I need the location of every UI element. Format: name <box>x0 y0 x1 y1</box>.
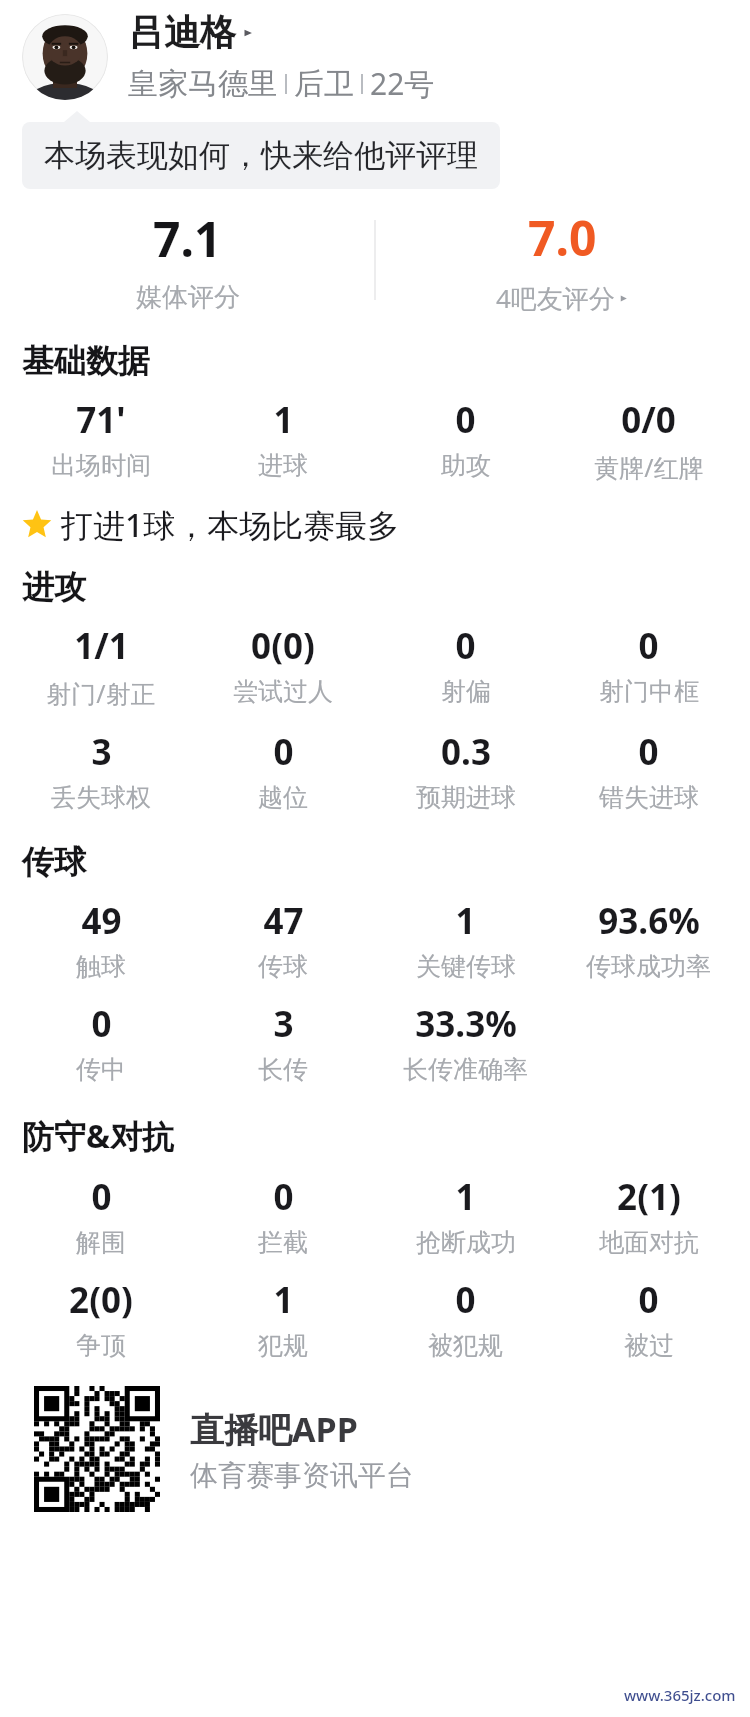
staticText: 助攻 <box>441 450 491 481</box>
button[interactable]: 0 <box>374 387 557 490</box>
staticText: 抢断成功 <box>416 1227 516 1258</box>
button[interactable]: 0 <box>374 613 557 716</box>
staticText: 传中 <box>76 1054 126 1085</box>
staticText: 错失进球 <box>599 782 699 813</box>
button[interactable]: 0.3 <box>374 719 557 822</box>
staticText: 93.6% <box>598 897 700 945</box>
button[interactable]: 0(0) <box>192 613 374 716</box>
button[interactable]: 0 <box>10 1164 192 1267</box>
button[interactable]: 71' <box>10 387 192 490</box>
staticText: 进球 <box>258 450 308 481</box>
staticText: 0 <box>638 728 659 776</box>
staticText: 2(0) <box>69 1276 133 1324</box>
staticText: 吕迪格 <box>128 10 236 55</box>
staticText: 0 <box>273 728 294 776</box>
staticText: 71' <box>76 396 126 444</box>
staticText: 出场时间 <box>51 450 151 481</box>
button[interactable]: 1 <box>192 1267 374 1370</box>
button[interactable]: 1 <box>192 387 374 490</box>
staticText: 被犯规 <box>428 1330 503 1361</box>
staticText: 3 <box>273 1000 294 1048</box>
staticText: 47 <box>263 897 304 945</box>
staticText: 0 <box>638 1276 659 1324</box>
staticText: 触球 <box>76 951 126 982</box>
staticText: 1 <box>273 396 294 444</box>
staticText: 地面对抗 <box>599 1227 699 1258</box>
staticText: 长传 <box>258 1054 308 1085</box>
button[interactable]: 0 <box>557 719 740 822</box>
button[interactable]: 7.1 <box>0 201 375 319</box>
staticText: 0/0 <box>621 396 676 444</box>
staticText: 0 <box>91 1000 112 1048</box>
staticText: www.365jz.com <box>624 1685 736 1705</box>
staticText: 射门中框 <box>599 676 699 707</box>
staticText: 射门/射正 <box>46 676 156 710</box>
staticText: 防守&对抗 <box>22 1114 175 1158</box>
staticText: 传球成功率 <box>586 951 711 982</box>
button[interactable]: 33.3% <box>374 991 557 1094</box>
staticText: 被过 <box>624 1330 674 1361</box>
staticText: 49 <box>81 897 122 945</box>
staticText: 后卫 <box>294 65 354 103</box>
staticText: 0 <box>455 622 476 670</box>
button[interactable]: 2(1) <box>557 1164 740 1267</box>
staticText: 射偏 <box>441 676 491 707</box>
staticText: 0 <box>638 622 659 670</box>
staticText: 打进1球，本场比赛最多 <box>61 503 400 547</box>
button[interactable]: 0 <box>192 719 374 822</box>
staticText: 0 <box>455 396 476 444</box>
staticText: 1 <box>455 1173 476 1221</box>
staticText: 22号 <box>370 63 435 104</box>
staticText: 本场表现如何，快来给他评评理 <box>44 136 478 175</box>
staticText: 7.0 <box>528 205 597 270</box>
staticText: 7.1 <box>153 206 222 271</box>
staticText: 传球 <box>258 951 308 982</box>
button[interactable]: 0/0 <box>557 387 740 493</box>
staticText: 预期进球 <box>416 782 516 813</box>
staticText: 2(1) <box>617 1173 681 1221</box>
staticText: 越位 <box>258 782 308 813</box>
button[interactable]: 打进1球，本场比赛最多 <box>22 503 730 547</box>
staticText: 0(0) <box>251 622 315 670</box>
staticText: 尝试过人 <box>233 676 333 707</box>
staticText: 0.3 <box>441 728 491 776</box>
staticText: 长传准确率 <box>403 1054 528 1085</box>
staticText: 解围 <box>76 1227 126 1258</box>
button[interactable]: 93.6% <box>557 888 740 991</box>
staticText: 1/1 <box>74 622 129 670</box>
staticText: 体育赛事资讯平台 <box>190 1458 414 1493</box>
staticText: 犯规 <box>258 1330 308 1361</box>
button[interactable]: 2(0) <box>10 1267 192 1370</box>
button[interactable]: 1 <box>374 888 557 991</box>
staticText: 黄牌/红牌 <box>594 450 704 484</box>
staticText: 争顶 <box>76 1330 126 1361</box>
button[interactable]: 直播吧APP <box>34 1386 750 1512</box>
staticText: 1 <box>455 897 476 945</box>
button[interactable]: 47 <box>192 888 374 991</box>
staticText: 关键传球 <box>416 951 516 982</box>
button[interactable]: 3 <box>192 991 374 1094</box>
staticText: 0 <box>273 1173 294 1221</box>
staticText: 皇家马德里 <box>128 65 278 103</box>
staticText: 基础数据 <box>22 341 150 381</box>
staticText: 传球 <box>22 842 86 882</box>
button[interactable]: 0 <box>192 1164 374 1267</box>
button[interactable]: 3 <box>10 719 192 822</box>
staticText: 0 <box>455 1276 476 1324</box>
button[interactable]: 本场表现如何，快来给他评评理 <box>22 122 500 189</box>
button[interactable]: 0 <box>557 613 740 716</box>
button[interactable]: 1 <box>374 1164 557 1267</box>
button[interactable]: 0 <box>557 1267 740 1370</box>
staticText: 33.3% <box>415 1000 517 1048</box>
button[interactable]: 吕迪格 <box>22 10 730 104</box>
staticText: 媒体评分 <box>136 281 240 314</box>
staticText: 进攻 <box>22 567 86 607</box>
staticText: 4吧友评分 <box>496 280 615 316</box>
button[interactable]: 1/1 <box>10 613 192 719</box>
button[interactable]: 49 <box>10 888 192 991</box>
button[interactable]: 0 <box>10 991 192 1094</box>
button[interactable]: 0 <box>374 1267 557 1370</box>
staticText: 拦截 <box>258 1227 308 1258</box>
button[interactable]: 7.0 <box>375 201 750 319</box>
staticText: 0 <box>91 1173 112 1221</box>
